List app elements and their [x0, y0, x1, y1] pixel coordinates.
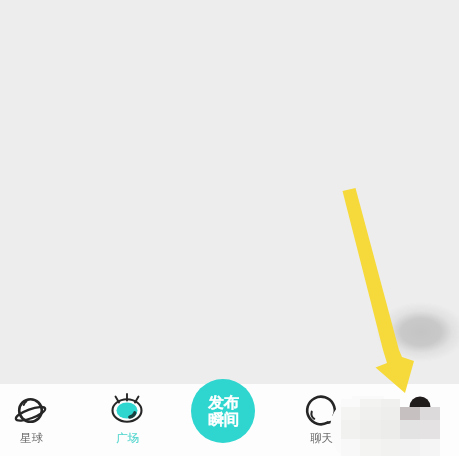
staticText: 我 — [414, 431, 426, 445]
button[interactable]: Profile tab — [380, 384, 459, 456]
staticText: 广场 — [116, 431, 139, 445]
button[interactable]: Square tab — [87, 384, 167, 456]
staticText: 星球 — [20, 431, 43, 445]
button[interactable]: Chat tab — [281, 384, 361, 456]
button[interactable]: Planet tab — [0, 384, 71, 456]
button[interactable]: 发布 瞬间 — [191, 379, 255, 443]
staticText: 聊天 — [310, 431, 333, 445]
staticText: 发布 瞬间 — [208, 393, 239, 430]
